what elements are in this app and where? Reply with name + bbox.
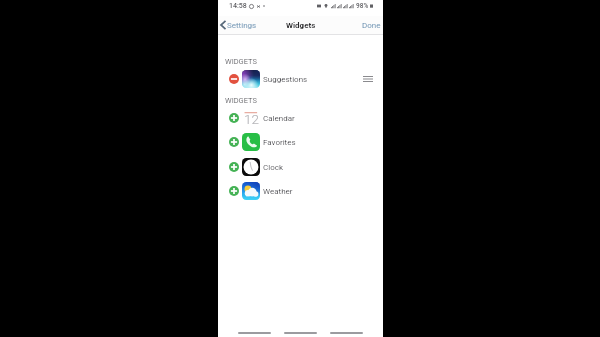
other: Add Weather bbox=[229, 186, 239, 196]
staticText: Calendar bbox=[263, 114, 295, 123]
staticText: WIDGETS bbox=[225, 96, 257, 105]
other: Reorder Suggestions bbox=[363, 76, 373, 82]
other: Add Calendar bbox=[229, 113, 239, 123]
staticText: Widgets bbox=[286, 21, 316, 30]
staticText: WIDGETS bbox=[225, 57, 257, 66]
button[interactable]: Add Weather bbox=[218, 179, 383, 203]
staticText: Settings bbox=[227, 21, 257, 30]
button[interactable]: Done bbox=[358, 18, 383, 33]
button[interactable]: Settings bbox=[218, 18, 261, 32]
button[interactable]: Add Favorites bbox=[218, 130, 383, 154]
staticText: 98% bbox=[356, 2, 369, 10]
other: Remove Suggestions bbox=[229, 74, 239, 84]
button[interactable]: Remove Suggestions bbox=[218, 67, 383, 91]
other: Add Clock bbox=[229, 162, 239, 172]
button[interactable]: Add Calendar bbox=[218, 106, 383, 130]
staticText: Clock bbox=[263, 163, 283, 172]
staticText: Suggestions bbox=[263, 75, 308, 84]
staticText: 12 bbox=[244, 111, 259, 127]
staticText: 14:58 bbox=[229, 2, 247, 10]
button[interactable]: Add Clock bbox=[218, 155, 383, 179]
staticText: Weather bbox=[263, 187, 293, 196]
staticText: Favorites bbox=[263, 138, 296, 147]
other: Add Favorites bbox=[229, 137, 239, 147]
